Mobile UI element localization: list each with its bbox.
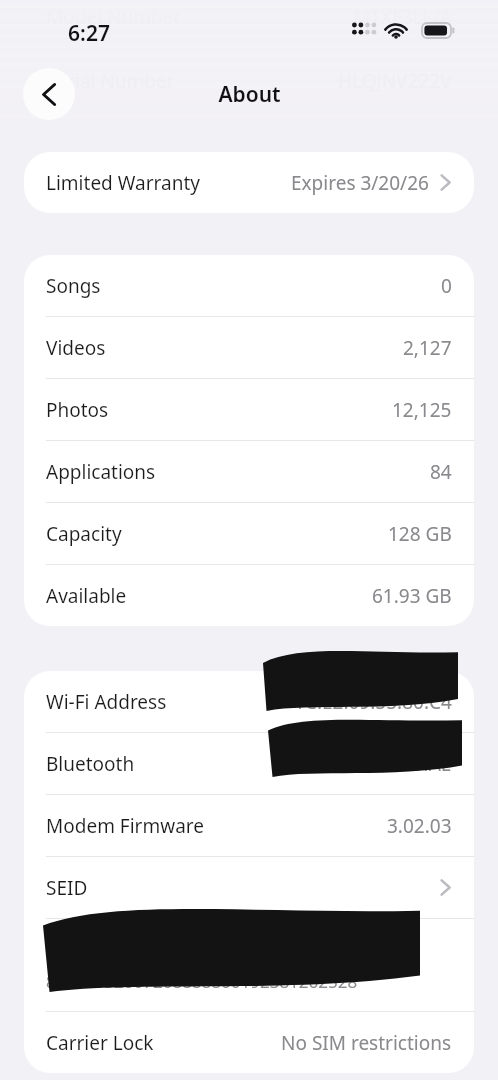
- staticText: 0: [441, 273, 452, 299]
- staticText: Serial Number: [46, 68, 175, 94]
- button[interactable]: Wi-Fi Address: [24, 671, 474, 733]
- staticText: MTXF3LL/A: [353, 4, 452, 30]
- button[interactable]: EID: [24, 919, 474, 1012]
- staticText: Bluetooth: [46, 751, 135, 777]
- staticText: Applications: [46, 459, 156, 485]
- button[interactable]: Videos: [24, 317, 474, 379]
- button[interactable]: Capacity: [24, 503, 474, 565]
- staticText: 1C:E2:09:55:ED:AE: [291, 751, 452, 777]
- staticText: 84: [430, 459, 452, 485]
- staticText: 6:27: [68, 19, 110, 48]
- staticText: Modem Firmware: [46, 813, 204, 839]
- staticText: Expires 3/20/26: [291, 170, 429, 196]
- staticText: SEID: [46, 875, 88, 901]
- staticText: 3.02.03: [387, 813, 452, 839]
- staticText: 128 GB: [388, 521, 452, 547]
- button[interactable]: Limited Warranty: [24, 152, 474, 213]
- staticText: Photos: [46, 397, 109, 423]
- staticText: 61.93 GB: [372, 583, 452, 609]
- staticText: EID: [46, 937, 77, 963]
- staticText: Capacity: [46, 521, 122, 547]
- staticText: 12,125: [392, 397, 452, 423]
- staticText: Limited Warranty: [46, 170, 200, 196]
- button[interactable]: Photos: [24, 379, 474, 441]
- staticText: About: [218, 80, 281, 109]
- button[interactable]: Songs: [24, 255, 474, 317]
- button[interactable]: Bluetooth: [24, 733, 474, 795]
- button[interactable]: Back: [23, 68, 75, 120]
- staticText: 2,127: [403, 335, 452, 361]
- staticText: Songs: [46, 273, 101, 299]
- staticText: Model Number: [46, 4, 182, 30]
- staticText: No SIM restrictions: [281, 1030, 452, 1056]
- button[interactable]: Carrier Lock: [24, 1012, 474, 1073]
- staticText: Available: [46, 583, 127, 609]
- button[interactable]: Available: [24, 565, 474, 626]
- button[interactable]: Applications: [24, 441, 474, 503]
- staticText: Carrier Lock: [46, 1030, 154, 1056]
- staticText: 1C:E2:09:55:80:C4: [294, 689, 452, 715]
- button[interactable]: Modem Firmware: [24, 795, 474, 857]
- button[interactable]: SEID: [24, 857, 474, 919]
- staticText: Wi-Fi Address: [46, 689, 167, 715]
- staticText: 89049032007208888800192381262528: [46, 970, 358, 993]
- staticText: Videos: [46, 335, 106, 361]
